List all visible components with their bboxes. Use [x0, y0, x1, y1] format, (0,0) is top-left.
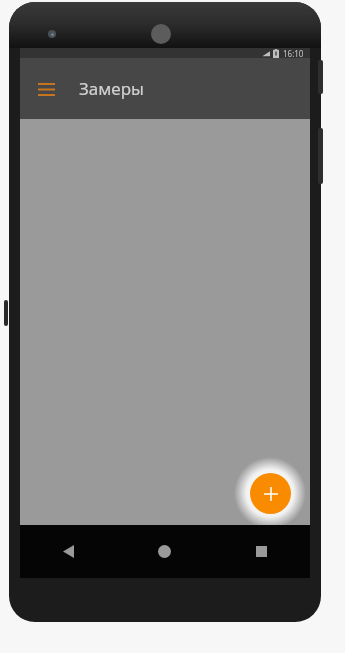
button[interactable]: Open navigation drawer: [26, 69, 66, 109]
button[interactable]: Home: [116, 525, 213, 578]
button[interactable]: Add measurement: [234, 457, 306, 529]
button[interactable]: Back: [20, 525, 116, 578]
staticText: 16:10: [283, 48, 304, 58]
button[interactable]: Recent apps: [213, 525, 310, 578]
staticText: Замеры: [79, 77, 144, 100]
